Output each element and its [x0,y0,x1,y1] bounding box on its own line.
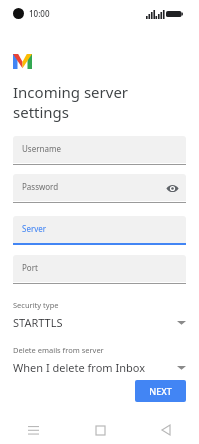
staticText: Username [22,143,61,154]
button[interactable]: NEXT [135,380,186,402]
staticText: STARTTLS [13,315,177,330]
button[interactable]: Port [13,255,186,284]
button[interactable]: Password [13,174,186,203]
staticText: Delete emails from server [13,345,104,355]
button[interactable]: Security type [13,300,186,330]
staticText: NEXT [149,385,172,397]
button[interactable]: Home [67,416,133,444]
staticText: When I delete from Inbox [13,360,177,375]
staticText: Security type [13,300,59,310]
staticText: Port [22,262,38,273]
button[interactable]: Delete emails from server [13,345,186,375]
button[interactable]: Server [13,216,186,245]
staticText: Incoming server settings [13,82,186,122]
staticText: Password [22,181,59,192]
button[interactable]: Show password [164,180,180,196]
button[interactable]: Back [133,416,199,444]
button[interactable]: Recent apps [0,416,67,444]
button[interactable]: Username [13,136,186,165]
staticText: 10:00 [29,8,50,19]
staticText: Server [22,223,47,234]
